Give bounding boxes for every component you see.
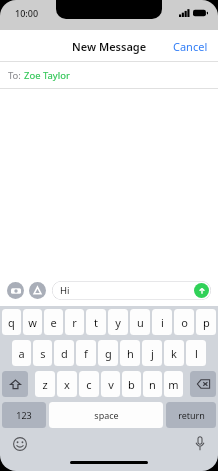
staticText: New Message bbox=[72, 39, 147, 54]
button[interactable]: Dictation bbox=[195, 436, 205, 451]
button[interactable]: p bbox=[196, 309, 216, 335]
staticText: v bbox=[108, 377, 114, 392]
staticText: s bbox=[40, 346, 46, 361]
staticText: r bbox=[72, 315, 77, 330]
button[interactable]: m bbox=[164, 371, 183, 397]
button[interactable]: h bbox=[120, 340, 140, 366]
staticText: w bbox=[28, 315, 37, 330]
staticText: z bbox=[42, 377, 48, 392]
button[interactable]: a bbox=[12, 340, 31, 366]
staticText: n bbox=[149, 377, 156, 392]
button[interactable]: f bbox=[76, 340, 96, 366]
button[interactable]: t bbox=[86, 309, 106, 335]
button[interactable]: b bbox=[122, 371, 141, 397]
staticText: t bbox=[94, 315, 98, 330]
button[interactable]: g bbox=[98, 340, 118, 366]
button[interactable]: r bbox=[65, 309, 84, 335]
staticText: To: bbox=[8, 69, 24, 82]
staticText: b bbox=[128, 377, 135, 392]
staticText: o bbox=[181, 315, 188, 330]
staticText: y bbox=[115, 315, 121, 330]
button[interactable]: Apps bbox=[29, 282, 46, 299]
button[interactable]: l bbox=[186, 340, 206, 366]
staticText: d bbox=[61, 346, 68, 361]
button[interactable]: Camera bbox=[7, 282, 24, 299]
button[interactable]: Send bbox=[194, 283, 209, 298]
staticText: m bbox=[168, 377, 179, 392]
button[interactable]: o bbox=[174, 309, 194, 335]
button[interactable]: e bbox=[44, 309, 63, 335]
staticText: c bbox=[86, 377, 92, 392]
button[interactable]: v bbox=[101, 371, 120, 397]
staticText: f bbox=[84, 346, 88, 361]
staticText: g bbox=[105, 346, 112, 361]
button[interactable]: return bbox=[166, 402, 216, 428]
button[interactable]: z bbox=[35, 371, 55, 397]
staticText: Hi bbox=[60, 284, 70, 297]
button[interactable]: To: bbox=[0, 62, 218, 89]
button[interactable]: n bbox=[143, 371, 162, 397]
button[interactable]: u bbox=[130, 309, 150, 335]
button[interactable]: Shift bbox=[2, 371, 28, 397]
staticText: k bbox=[171, 346, 177, 361]
staticText: h bbox=[127, 346, 134, 361]
button[interactable]: d bbox=[54, 340, 74, 366]
button[interactable]: k bbox=[164, 340, 184, 366]
staticText: 123 bbox=[16, 409, 32, 421]
button[interactable]: 123 bbox=[2, 402, 46, 428]
staticText: u bbox=[137, 315, 144, 330]
staticText: a bbox=[18, 346, 25, 361]
button[interactable]: x bbox=[57, 371, 77, 397]
staticText: x bbox=[64, 377, 70, 392]
button[interactable]: Emoji bbox=[13, 437, 27, 451]
button[interactable]: c bbox=[79, 371, 99, 397]
staticText: j bbox=[151, 346, 154, 361]
button[interactable]: Hi bbox=[52, 281, 211, 300]
button[interactable]: j bbox=[142, 340, 162, 366]
button[interactable]: i bbox=[152, 309, 172, 335]
button[interactable]: w bbox=[23, 309, 42, 335]
staticText: Cancel bbox=[173, 39, 208, 54]
staticText: space bbox=[94, 409, 119, 421]
button[interactable]: s bbox=[33, 340, 52, 366]
staticText: Zoe Taylor bbox=[24, 69, 70, 82]
button[interactable]: Backspace bbox=[190, 371, 216, 397]
staticText: l bbox=[195, 346, 198, 361]
staticText: i bbox=[161, 315, 164, 330]
button[interactable]: Cancel bbox=[163, 33, 218, 60]
staticText: 10:00 bbox=[15, 7, 39, 19]
staticText: e bbox=[50, 315, 57, 330]
staticText: q bbox=[8, 315, 15, 330]
staticText: return bbox=[178, 409, 205, 421]
staticText: p bbox=[203, 315, 210, 330]
button[interactable]: q bbox=[2, 309, 21, 335]
button[interactable]: y bbox=[108, 309, 128, 335]
button[interactable]: space bbox=[49, 402, 163, 428]
